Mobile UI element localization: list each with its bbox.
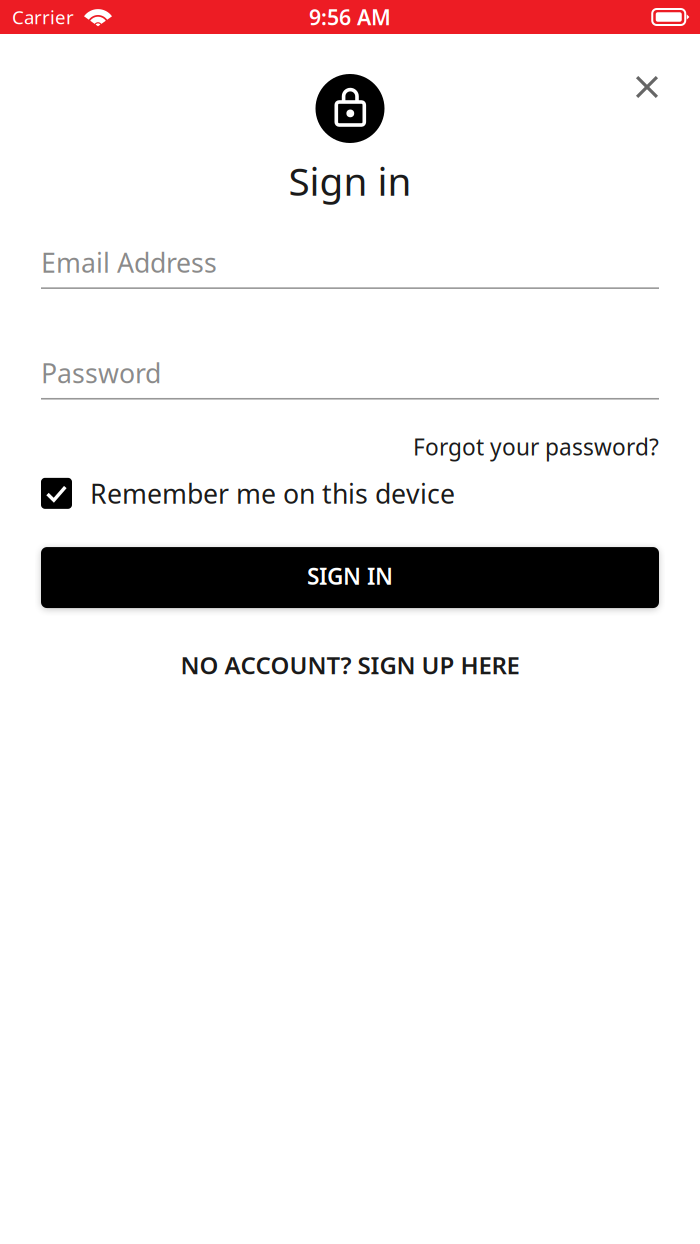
staticText: 9:56 AM <box>309 3 391 31</box>
staticText: Carrier <box>12 5 74 29</box>
button[interactable]: NO ACCOUNT? SIGN UP HERE <box>180 641 519 689</box>
button[interactable]: SIGN IN <box>41 547 659 608</box>
staticText: SIGN IN <box>307 561 393 591</box>
staticText: Sign in <box>288 155 411 206</box>
staticText: Email Address <box>41 245 217 280</box>
button[interactable]: Close <box>625 65 669 109</box>
staticText: Forgot your password? <box>413 431 659 462</box>
staticText: Remember me on this device <box>90 476 455 511</box>
button[interactable]: Remember me on this device <box>41 470 455 517</box>
staticText: NO ACCOUNT? SIGN UP HERE <box>180 649 519 681</box>
staticText: Password <box>41 355 161 391</box>
button[interactable]: Forgot your password? <box>413 425 659 468</box>
